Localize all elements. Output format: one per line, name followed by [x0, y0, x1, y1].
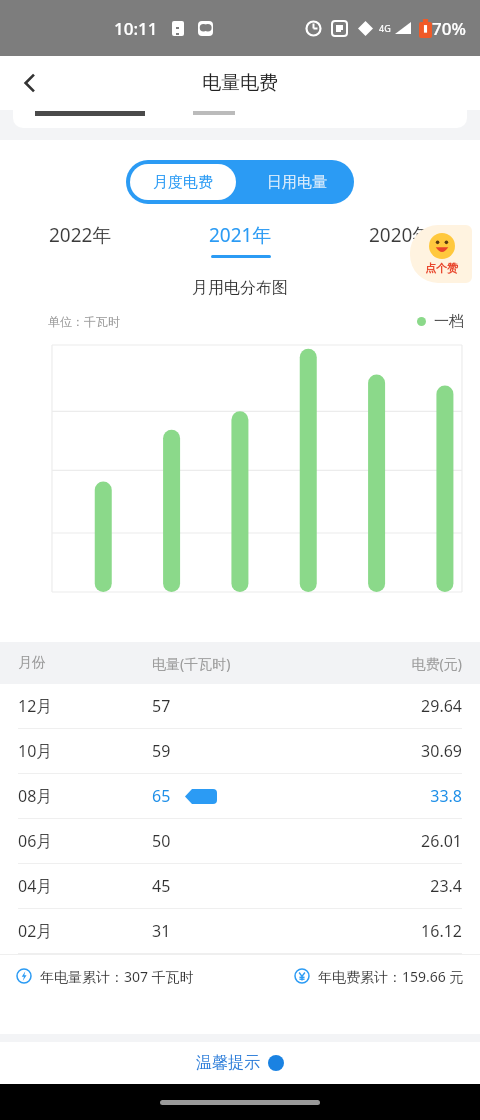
staticText: 31: [152, 920, 171, 942]
staticText: 04月: [18, 875, 152, 897]
button[interactable]: 2022年: [0, 222, 160, 248]
button[interactable]: 06月: [0, 819, 480, 864]
staticText: 59: [152, 740, 171, 762]
button[interactable]: 温馨提示: [188, 1049, 292, 1077]
staticText: 4G: [379, 22, 391, 34]
button[interactable]: 日用电量: [240, 160, 354, 204]
staticText: 70%: [432, 17, 466, 40]
staticText: 月份: [18, 654, 152, 672]
staticText: 年电量累计：307 千瓦时: [40, 967, 194, 986]
staticText: 29.64: [327, 695, 462, 717]
staticText: 65: [152, 785, 171, 807]
button[interactable]: 02月: [0, 909, 480, 954]
button[interactable]: 2020年: [320, 222, 480, 248]
button[interactable]: 12月: [0, 684, 480, 729]
staticText: 电量(千瓦时): [152, 654, 327, 673]
staticText: 08月: [18, 785, 152, 807]
staticText: 点个赞: [425, 261, 458, 275]
staticText: 月度电费: [153, 173, 213, 192]
staticText: 2021年: [209, 222, 272, 248]
staticText: 06月: [18, 830, 152, 852]
staticText: 2020年: [369, 222, 432, 248]
staticText: 26.01: [327, 830, 462, 852]
staticText: 一档: [434, 312, 464, 331]
staticText: 45: [152, 875, 171, 897]
button[interactable]: 08月: [0, 774, 480, 819]
staticText: 10:11: [114, 17, 158, 40]
staticText: 50: [152, 830, 171, 852]
button[interactable]: 月度电费: [130, 164, 236, 200]
button[interactable]: 10月: [0, 729, 480, 774]
staticText: 02月: [18, 920, 152, 942]
button[interactable]: Back: [8, 61, 52, 105]
staticText: 月用电分布图: [0, 278, 480, 298]
button[interactable]: 04月: [0, 864, 480, 909]
staticText: 16.12: [327, 920, 462, 942]
staticText: 电费(元): [327, 654, 462, 673]
staticText: 温馨提示: [196, 1053, 260, 1073]
staticText: 单位：千瓦时: [48, 314, 120, 329]
staticText: 年电费累计：159.66 元: [318, 967, 464, 986]
button[interactable]: 2021年: [160, 222, 320, 258]
button[interactable]: 点个赞: [410, 225, 472, 283]
staticText: 2022年: [49, 222, 112, 248]
staticText: 日用电量: [267, 173, 327, 192]
staticText: 电量电费: [202, 71, 278, 95]
staticText: 30.69: [327, 740, 462, 762]
staticText: 33.8: [327, 785, 462, 807]
staticText: 57: [152, 695, 171, 717]
staticText: 23.4: [327, 875, 462, 897]
staticText: 12月: [18, 695, 152, 717]
staticText: 10月: [18, 740, 152, 762]
